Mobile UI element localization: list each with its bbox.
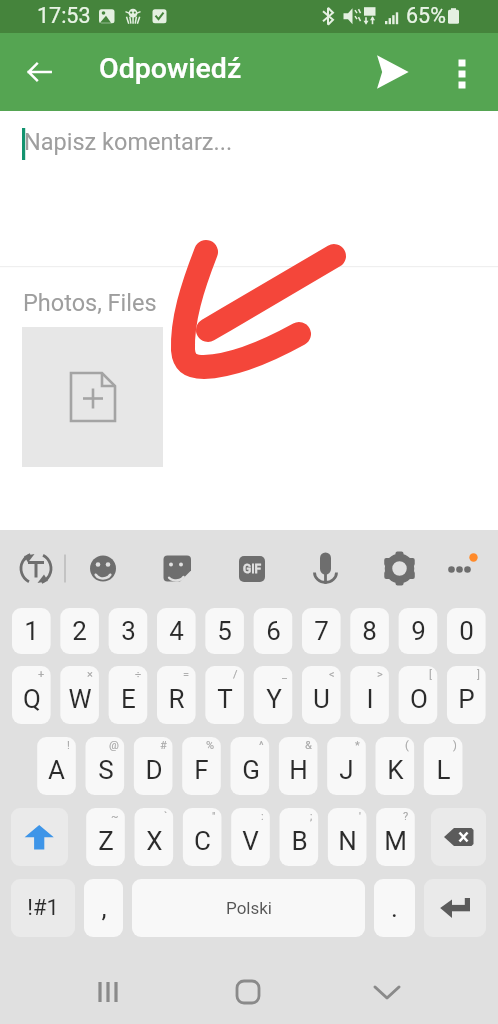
staticText: E: [121, 684, 136, 714]
staticText: !: [67, 739, 70, 752]
button[interactable]: 4: [157, 608, 196, 654]
button[interactable]: 0: [447, 608, 486, 654]
staticText: J: [339, 755, 354, 785]
button[interactable]: Hide keyboard: [357, 962, 417, 1024]
staticText: /: [233, 668, 238, 681]
staticText: .: [391, 893, 398, 923]
button[interactable]: Recents: [78, 962, 138, 1024]
button[interactable]: 2: [60, 608, 99, 654]
staticText: >: [377, 668, 383, 681]
button[interactable]: D: [134, 737, 173, 795]
button[interactable]: !#1: [11, 879, 75, 937]
staticText: A: [48, 755, 65, 785]
staticText: 4: [169, 616, 184, 646]
staticText: %: [206, 739, 215, 752]
button[interactable]: P: [447, 666, 486, 724]
staticText: GIF: [243, 562, 262, 576]
button[interactable]: Z: [86, 808, 125, 866]
staticText: P: [458, 684, 475, 714]
button[interactable]: Polski: [132, 879, 365, 937]
staticText: #: [160, 739, 167, 752]
button[interactable]: U: [302, 666, 341, 724]
staticText: F: [194, 755, 209, 785]
button[interactable]: G: [231, 737, 270, 795]
button[interactable]: M: [376, 808, 415, 866]
staticText: 5: [217, 616, 232, 646]
staticText: Y: [266, 684, 282, 714]
button[interactable]: I: [350, 666, 389, 724]
button[interactable]: .: [374, 879, 415, 937]
staticText: L: [436, 755, 451, 785]
button[interactable]: S: [86, 737, 125, 795]
button[interactable]: Q: [12, 666, 51, 724]
staticText: (: [405, 739, 409, 752]
staticText: [: [429, 668, 432, 681]
staticText: +: [38, 668, 45, 681]
staticText: M: [384, 826, 407, 856]
button[interactable]: 8: [350, 608, 389, 654]
button[interactable]: W: [60, 666, 99, 724]
staticText: ÷: [135, 668, 142, 681]
button[interactable]: 7: [302, 608, 341, 654]
staticText: T: [217, 684, 233, 714]
staticText: 8: [362, 616, 377, 646]
button[interactable]: GIF: [239, 556, 265, 582]
staticText: *: [355, 739, 360, 752]
staticText: ~: [111, 810, 119, 823]
button[interactable]: Home: [218, 962, 278, 1024]
button[interactable]: T: [205, 666, 244, 724]
button[interactable]: B: [280, 808, 319, 866]
staticText: C: [194, 826, 211, 856]
staticText: U: [313, 684, 330, 714]
staticText: 6: [266, 616, 281, 646]
button[interactable]: 1: [12, 608, 51, 654]
button[interactable]: E: [109, 666, 148, 724]
staticText: ×: [87, 668, 93, 681]
staticText: _: [282, 668, 287, 681]
staticText: G: [242, 755, 260, 785]
staticText: H: [289, 755, 308, 785]
button[interactable]: 3: [109, 608, 148, 654]
staticText: B: [291, 826, 308, 856]
button[interactable]: 6: [254, 608, 293, 654]
button[interactable]: ,: [84, 879, 123, 937]
button[interactable]: Y: [254, 666, 293, 724]
staticText: &: [305, 739, 312, 752]
button[interactable]: 5: [205, 608, 244, 654]
button[interactable]: O: [399, 666, 438, 724]
staticText: ]: [477, 668, 480, 681]
staticText: D: [145, 755, 163, 785]
staticText: Z: [98, 826, 114, 856]
button[interactable]: X: [135, 808, 174, 866]
button[interactable]: Back: [16, 49, 62, 95]
staticText: 17:53: [37, 3, 91, 28]
button[interactable]: L: [424, 737, 463, 795]
staticText: N: [338, 826, 357, 856]
button[interactable]: C: [183, 808, 222, 866]
staticText: V: [242, 826, 259, 856]
button[interactable]: Add attachment: [22, 327, 163, 467]
button[interactable]: Napisz komentarz...: [0, 111, 498, 266]
staticText: 1: [24, 616, 39, 646]
button[interactable]: N: [328, 808, 367, 866]
button[interactable]: H: [279, 737, 318, 795]
staticText: ): [453, 739, 457, 752]
button[interactable]: Send: [369, 49, 415, 95]
button[interactable]: J: [327, 737, 366, 795]
staticText: 9: [411, 616, 426, 646]
button[interactable]: R: [157, 666, 196, 724]
button[interactable]: V: [231, 808, 270, 866]
button[interactable]: More options: [437, 49, 487, 99]
button[interactable]: K: [376, 737, 415, 795]
staticText: K: [387, 755, 404, 785]
staticText: ;: [310, 810, 313, 823]
staticText: X: [146, 826, 163, 856]
staticText: ": [212, 810, 216, 823]
staticText: 65%: [406, 3, 446, 28]
button[interactable]: F: [182, 737, 221, 795]
button[interactable]: 9: [399, 608, 438, 654]
button[interactable]: A: [37, 737, 76, 795]
staticText: @: [109, 739, 119, 752]
staticText: 0: [459, 616, 474, 646]
staticText: ': [359, 810, 361, 823]
